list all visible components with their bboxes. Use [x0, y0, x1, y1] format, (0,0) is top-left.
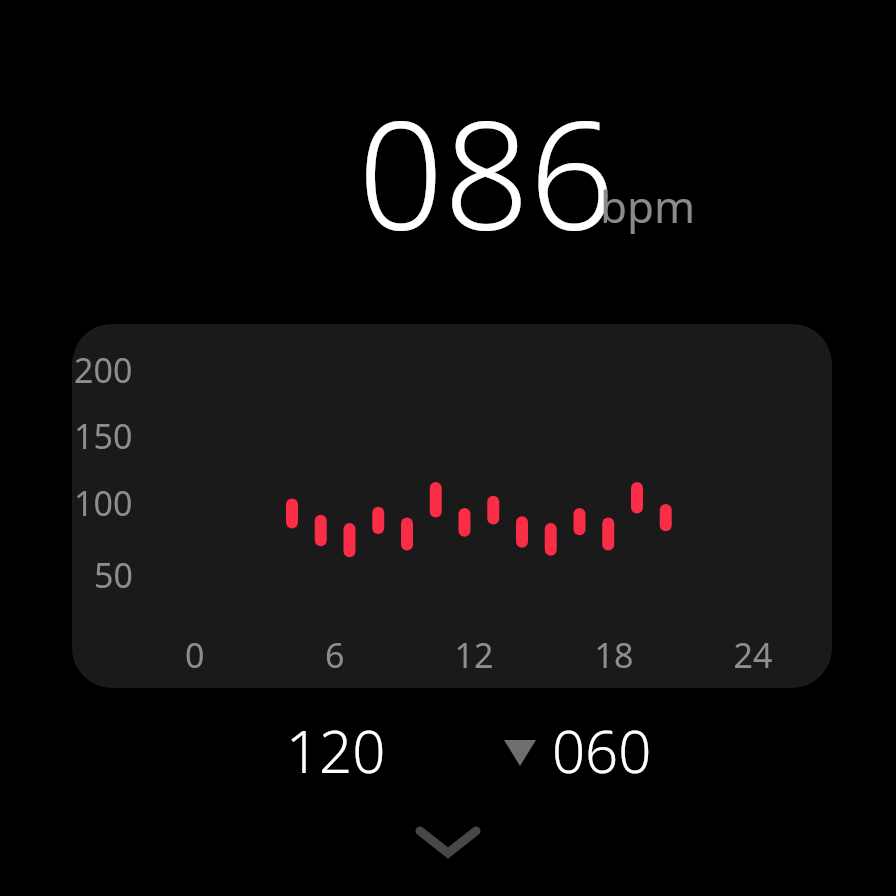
button[interactable]: Scroll down for more [388, 810, 508, 876]
button[interactable]: Heart rate history chart [72, 324, 832, 688]
